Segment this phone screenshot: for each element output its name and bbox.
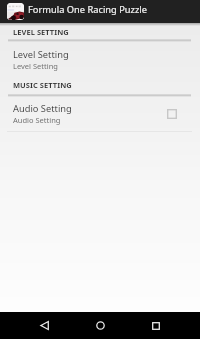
button[interactable]: Level Setting (0, 44, 200, 74)
staticText: LEVEL SETTING (13, 27, 69, 37)
staticText: Level Setting (13, 61, 58, 71)
button[interactable]: Audio Setting checkbox (167, 109, 177, 119)
staticText: MUSIC SETTING (13, 80, 72, 90)
staticText: Level Setting (13, 48, 69, 61)
button[interactable]: Home (86, 312, 114, 339)
button[interactable]: Audio Setting (0, 98, 200, 128)
staticText: Audio Setting (13, 115, 61, 125)
button[interactable]: Recent apps (142, 312, 170, 339)
button[interactable]: App icon (7, 3, 24, 20)
staticText: Audio Setting (13, 102, 72, 115)
button[interactable]: Back (30, 312, 58, 339)
staticText: Formula One Racing Puzzle (28, 3, 147, 16)
